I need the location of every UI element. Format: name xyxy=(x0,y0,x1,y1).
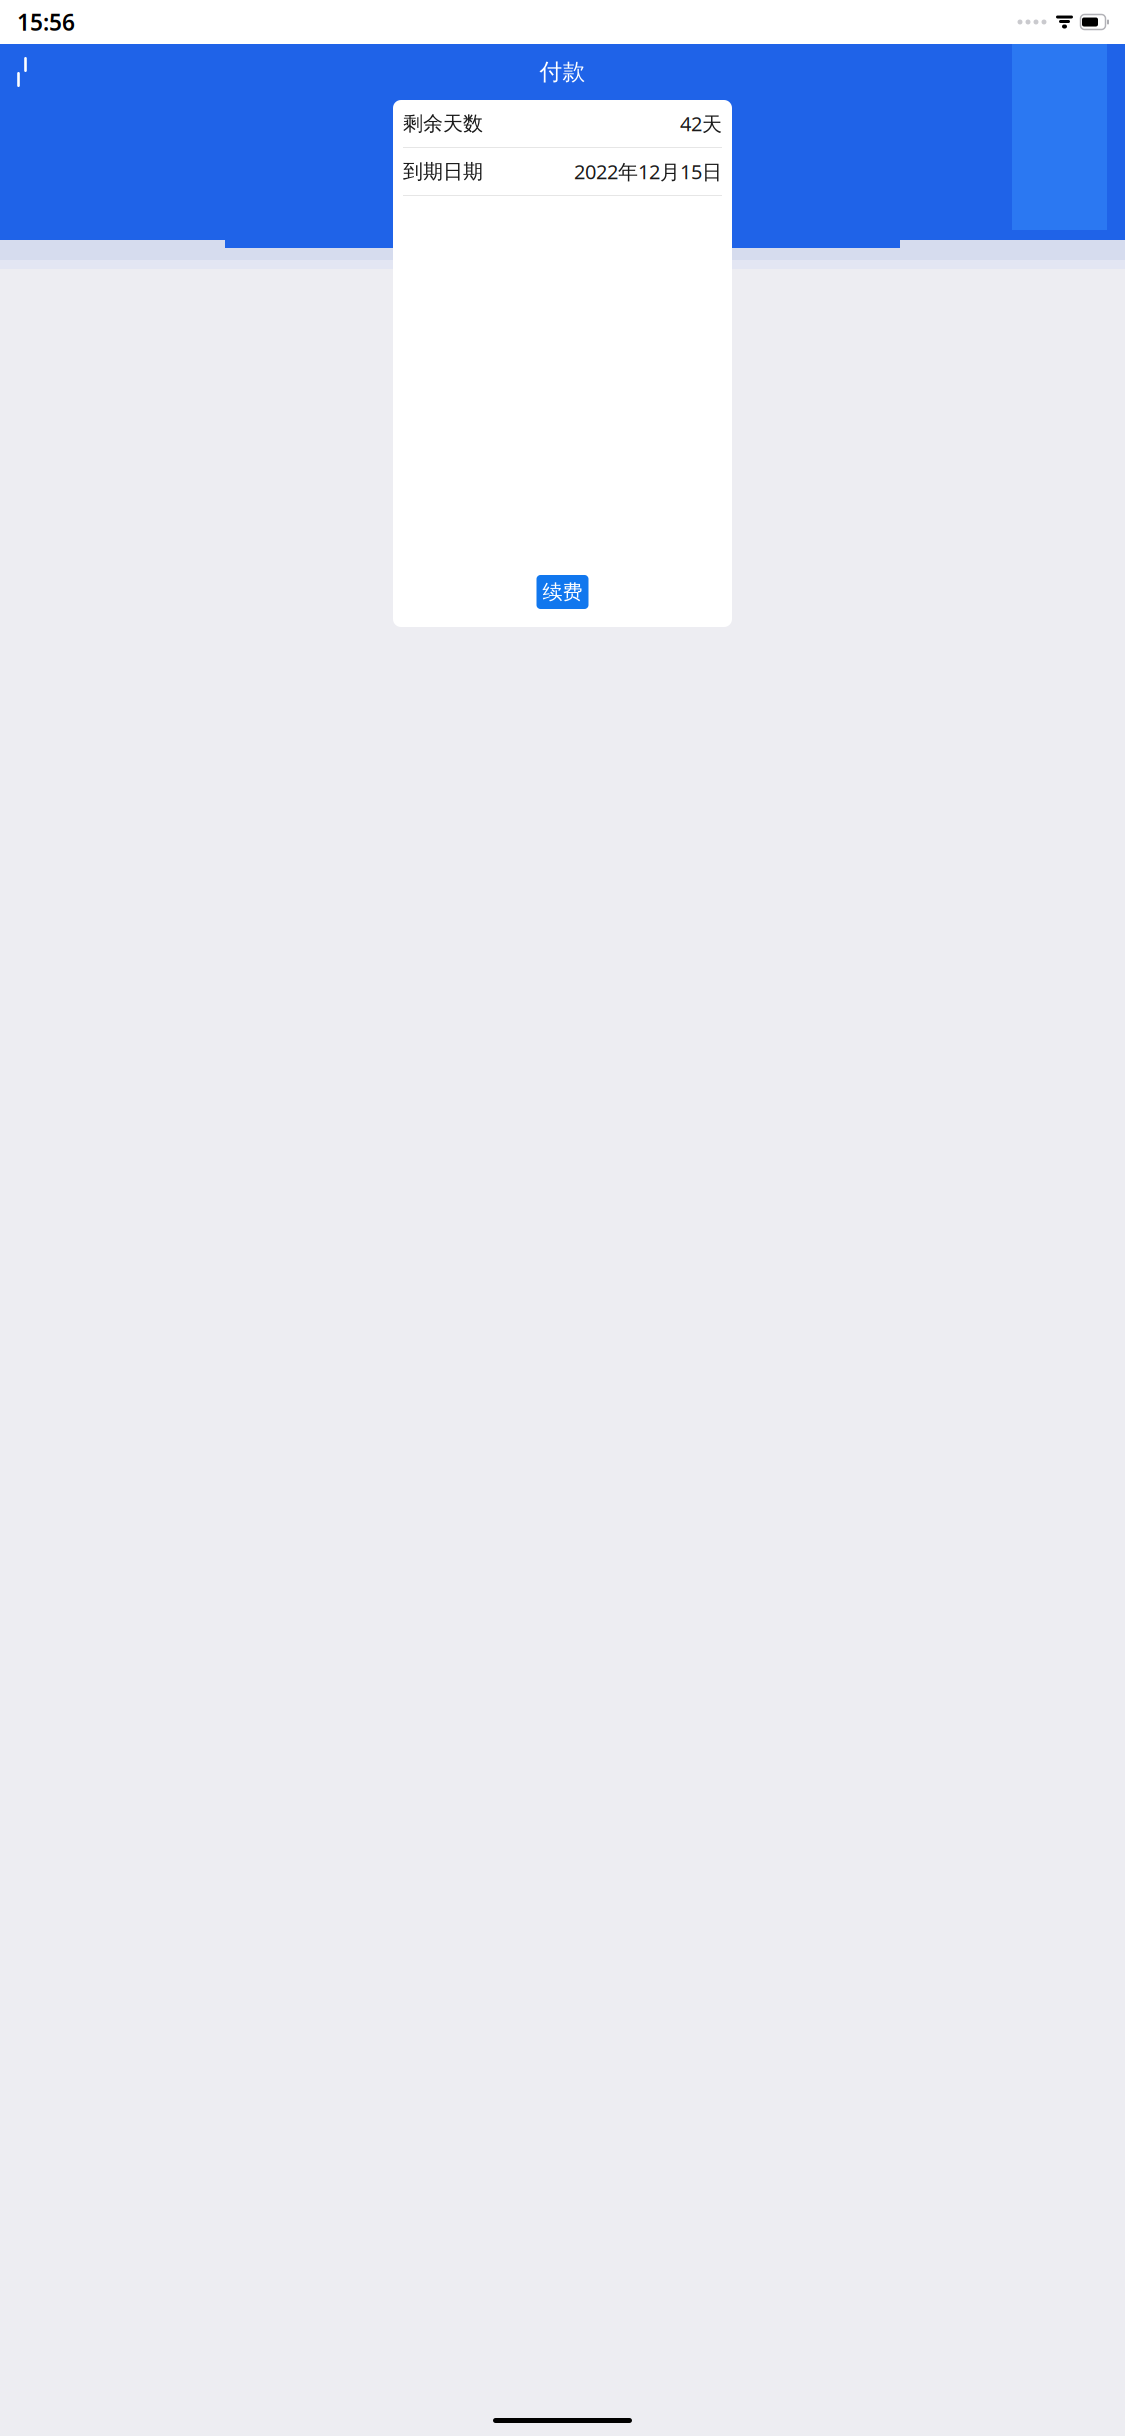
button[interactable]: 续费 xyxy=(536,575,588,609)
button[interactable]: 返回 xyxy=(0,50,44,94)
staticText: 到期日期 xyxy=(403,159,483,184)
staticText: 付款 xyxy=(539,58,585,86)
staticText: 15:56 xyxy=(17,7,75,37)
staticText: 剩余天数 xyxy=(403,111,483,136)
staticText: 2022年12月15日 xyxy=(574,158,722,185)
staticText: 42天 xyxy=(680,110,722,137)
staticText: 续费 xyxy=(542,580,582,604)
